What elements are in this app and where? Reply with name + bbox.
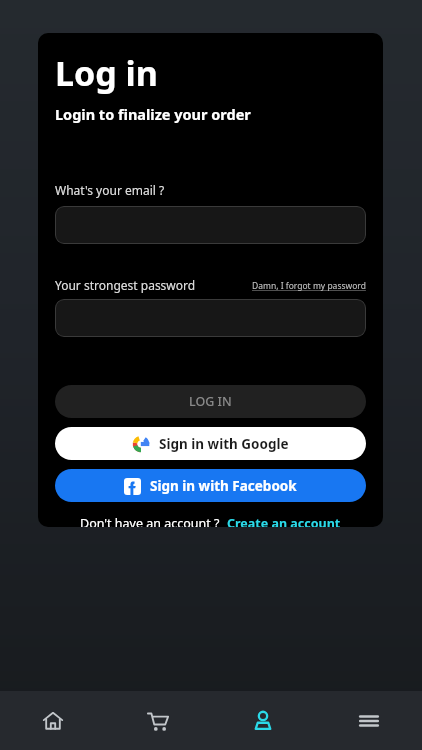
staticText: LOG IN	[189, 393, 232, 410]
staticText: Sign in with Facebook	[150, 477, 297, 495]
button[interactable]: Cart	[105, 691, 210, 750]
button[interactable]	[55, 206, 366, 244]
staticText: Sign in with Google	[159, 435, 289, 453]
button[interactable]: Damn, I forgot my password	[252, 280, 366, 293]
button[interactable]: Menu	[316, 691, 422, 750]
staticText: Login to finalize your order	[55, 104, 251, 124]
button[interactable]: Home	[0, 691, 105, 750]
button[interactable]: Account	[210, 691, 316, 750]
staticText: Create an account	[227, 515, 341, 527]
button[interactable]: Sign in with Facebook	[55, 469, 366, 502]
staticText: Your strongest password	[55, 277, 196, 293]
staticText: What's your email ?	[55, 182, 165, 198]
staticText: Log in	[55, 50, 158, 96]
staticText: Don't have an account ?	[80, 515, 220, 527]
button[interactable]: Create an account	[227, 515, 341, 527]
button[interactable]	[55, 299, 366, 337]
button[interactable]: Sign in with Google	[55, 427, 366, 460]
staticText: Damn, I forgot my password	[252, 280, 366, 292]
button[interactable]: LOG IN	[55, 385, 366, 418]
